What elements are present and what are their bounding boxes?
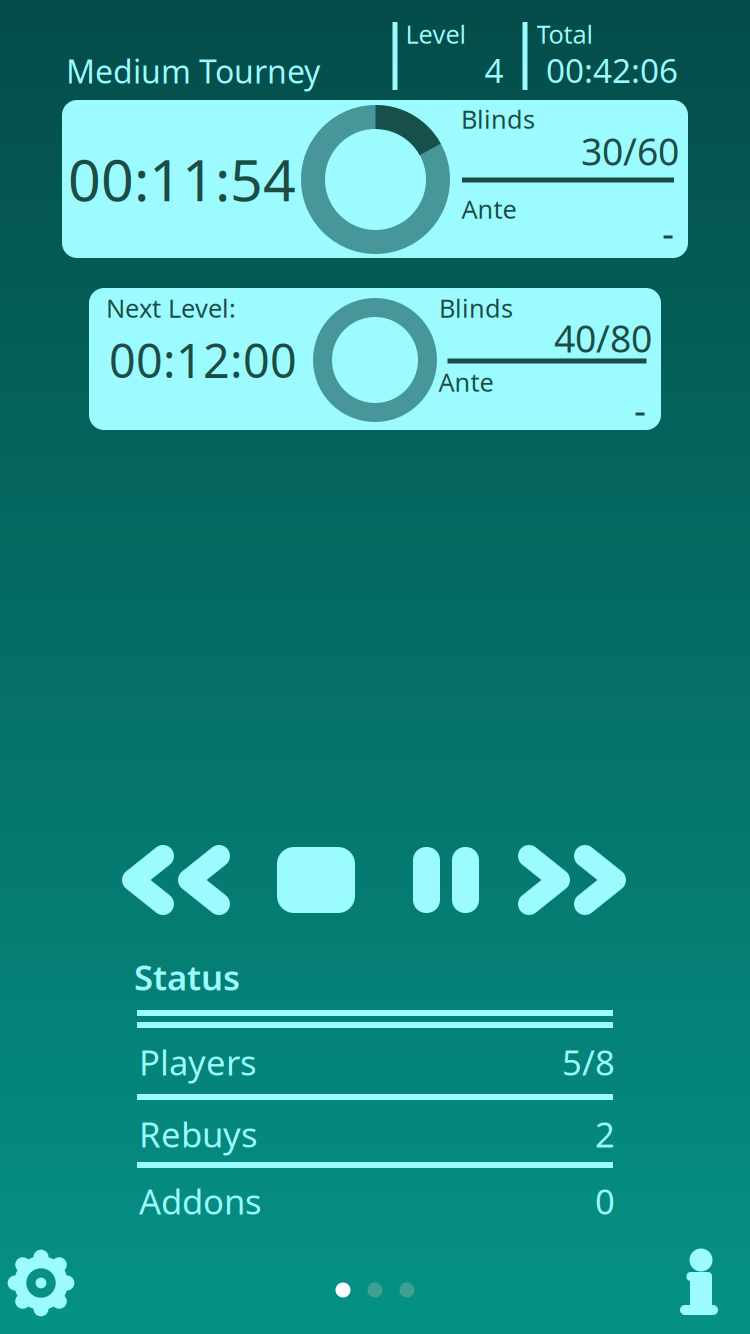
staticText: 30/60 <box>581 126 679 176</box>
button[interactable]: Info <box>656 1245 746 1325</box>
staticText: Next Level: <box>106 291 236 325</box>
staticText: Blinds <box>461 102 535 136</box>
staticText: 00:12:00 <box>109 329 297 391</box>
staticText: 00:42:06 <box>546 48 678 92</box>
staticText: 5/8 <box>562 1039 615 1085</box>
button[interactable]: Players <box>139 1031 615 1093</box>
staticText: Players <box>139 1039 257 1085</box>
button[interactable]: Next level <box>507 832 637 928</box>
staticText: Rebuys <box>139 1111 258 1157</box>
staticText: Blinds <box>439 291 513 325</box>
staticText: Ante <box>438 365 493 399</box>
staticText: Medium Tourney <box>66 50 320 92</box>
staticText: Level <box>405 17 466 51</box>
staticText: - <box>634 385 646 435</box>
staticText: 0 <box>595 1178 615 1224</box>
button[interactable]: Rebuys <box>139 1103 615 1165</box>
staticText: Status <box>134 954 240 1000</box>
button[interactable]: Previous level <box>111 832 241 928</box>
staticText: Ante <box>461 192 516 226</box>
button[interactable]: Settings <box>0 1239 85 1327</box>
button[interactable]: Stop <box>261 832 371 928</box>
staticText: 4 <box>484 48 503 92</box>
staticText: Addons <box>139 1178 262 1224</box>
button[interactable]: Addons <box>139 1170 615 1232</box>
staticText: 40/80 <box>554 313 652 363</box>
staticText: 2 <box>595 1111 615 1157</box>
staticText: - <box>662 208 674 258</box>
staticText: 00:11:54 <box>68 141 296 217</box>
button[interactable]: Pause <box>391 832 501 928</box>
staticText: Total <box>536 17 593 51</box>
